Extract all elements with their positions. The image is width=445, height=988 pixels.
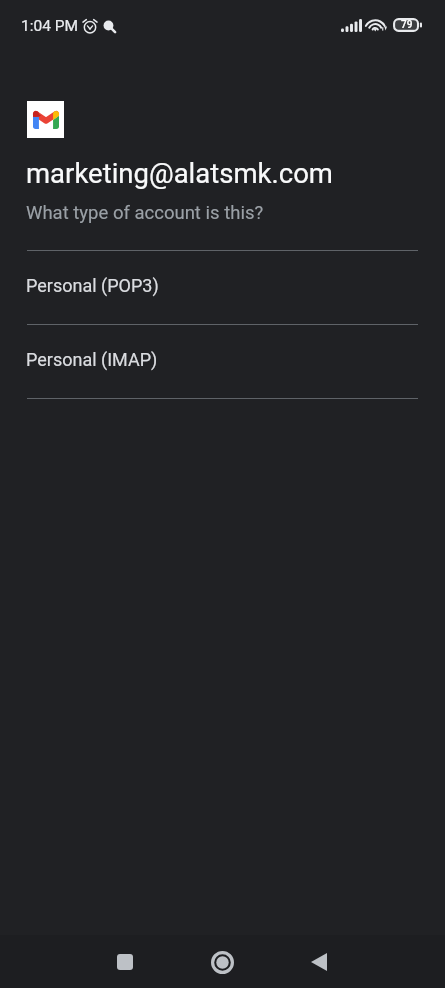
staticText: 1:04 PM <box>21 17 79 35</box>
button[interactable]: Personal (POP3) <box>0 249 445 322</box>
button[interactable]: Home <box>198 938 246 986</box>
staticText: Personal (POP3) <box>26 275 159 296</box>
staticText: 79 <box>401 19 413 31</box>
button[interactable]: Back <box>295 938 343 986</box>
staticText: Personal (IMAP) <box>26 349 158 370</box>
button[interactable]: Personal (IMAP) <box>0 323 445 396</box>
staticText: What type of account is this? <box>26 202 264 224</box>
button[interactable]: Recent apps <box>101 938 149 986</box>
staticText: marketing@alatsmk.com <box>26 157 333 189</box>
